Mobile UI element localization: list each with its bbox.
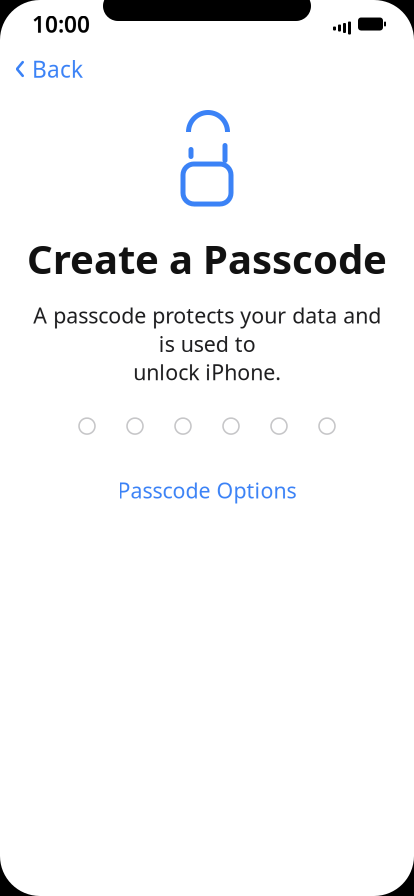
button[interactable]: Back bbox=[0, 46, 83, 92]
staticText: 10:00 bbox=[32, 9, 90, 39]
button[interactable]: Passcode Options bbox=[101, 468, 312, 512]
staticText: Back bbox=[32, 54, 83, 84]
staticText: Passcode Options bbox=[117, 476, 296, 504]
staticText: Create a Passcode bbox=[27, 232, 387, 285]
staticText: A passcode protects your data and is use… bbox=[33, 301, 381, 386]
